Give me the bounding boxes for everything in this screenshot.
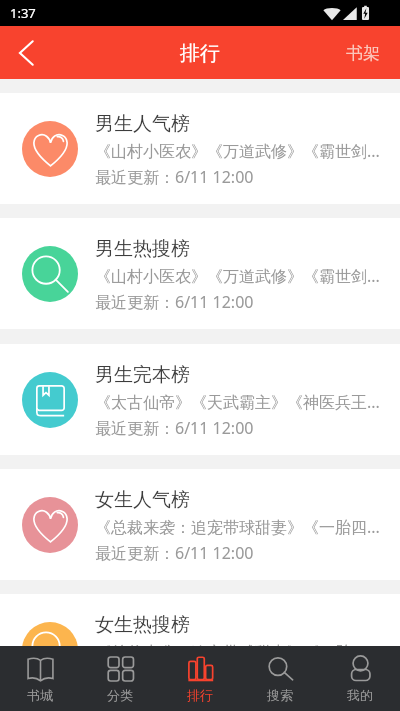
staticText: 《总裁来袭：追宠带球甜妻》《一胎四... [95,641,380,646]
button[interactable]: 排行 [160,646,240,711]
button[interactable]: 搜索 [240,646,320,711]
button[interactable]: 男生人气榜 [0,93,400,204]
staticText: 书城 [27,687,53,703]
staticText: 我的 [347,687,373,703]
staticText: 男生热搜榜 [95,237,190,261]
staticText: 女生人气榜 [95,488,190,512]
button[interactable]: 男生完本榜 [0,344,400,455]
button[interactable]: 女生热搜榜 [0,594,400,646]
button[interactable]: 我的 [320,646,400,711]
staticText: 男生人气榜 [95,112,190,136]
staticText: 《太古仙帝》《天武霸主》《神医兵王... [95,391,380,413]
staticText: 1:37 [10,4,36,22]
button[interactable]: 分类 [80,646,160,711]
button[interactable]: 书架 [330,26,400,79]
staticText: 最近更新：6/11 12:00 [95,417,254,439]
staticText: 搜索 [267,687,293,703]
staticText: 最近更新：6/11 12:00 [95,291,254,313]
staticText: 分类 [107,687,133,703]
button[interactable]: 书城 [0,646,80,711]
staticText: 最近更新：6/11 12:00 [95,542,254,564]
staticText: 《总裁来袭：追宠带球甜妻》《一胎四... [95,516,380,538]
button[interactable]: 男生热搜榜 [0,218,400,329]
button[interactable]: Back [0,27,52,79]
staticText: 排行 [187,687,213,703]
staticText: 排行 [180,41,220,66]
staticText: 最近更新：6/11 12:00 [95,166,254,188]
staticText: 男生完本榜 [95,363,190,387]
staticText: 《山村小医农》《万道武修》《霸世剑... [95,265,380,287]
staticText: 女生热搜榜 [95,613,190,637]
button[interactable]: 女生人气榜 [0,469,400,580]
staticText: 书架 [346,43,380,64]
staticText: 《山村小医农》《万道武修》《霸世剑... [95,140,380,162]
